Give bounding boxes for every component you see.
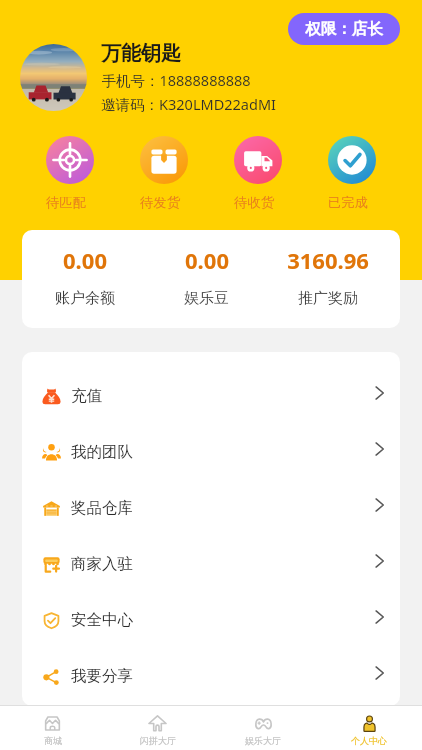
- button[interactable]: 娱乐大厅: [210, 711, 316, 746]
- button[interactable]: 商家入驻: [22, 536, 400, 592]
- staticText: 邀请码：K320LMD22adMI: [101, 94, 276, 114]
- staticText: 推广奖励: [298, 289, 358, 308]
- button[interactable]: 我要分享: [22, 648, 400, 704]
- button[interactable]: 闪拼大厅: [105, 711, 210, 746]
- button[interactable]: 个人中心: [316, 711, 422, 746]
- staticText: 权限：店长: [305, 19, 383, 39]
- button[interactable]: 待发货: [140, 136, 188, 211]
- button[interactable]: 商城: [0, 711, 105, 746]
- staticText: 万能钥匙: [101, 41, 181, 66]
- staticText: 娱乐大厅: [245, 735, 281, 746]
- staticText: 3160.96: [287, 245, 369, 275]
- button[interactable]: 充值: [22, 368, 400, 424]
- staticText: 0.00: [185, 245, 229, 275]
- button[interactable]: 已完成: [328, 136, 376, 211]
- staticText: 已完成: [328, 194, 368, 211]
- button[interactable]: 0.00: [146, 242, 267, 317]
- button[interactable]: 权限：店长: [288, 13, 400, 45]
- staticText: 商城: [44, 735, 62, 746]
- staticText: 商家入驻: [71, 554, 133, 574]
- button[interactable]: 我的团队: [22, 424, 400, 480]
- other: Avatar: [20, 44, 87, 111]
- button[interactable]: 奖品仓库: [22, 480, 400, 536]
- button[interactable]: 待收货: [234, 136, 282, 211]
- button[interactable]: 安全中心: [22, 592, 400, 648]
- staticText: 奖品仓库: [71, 498, 133, 518]
- staticText: 我要分享: [71, 666, 133, 686]
- staticText: 娱乐豆: [184, 289, 229, 308]
- staticText: 手机号：18888888888: [101, 70, 251, 90]
- staticText: 闪拼大厅: [140, 735, 176, 746]
- button[interactable]: 0.00: [24, 242, 146, 317]
- staticText: 个人中心: [351, 735, 387, 746]
- staticText: 待发货: [140, 194, 180, 211]
- staticText: 我的团队: [71, 442, 133, 462]
- staticText: 账户余额: [55, 289, 115, 308]
- staticText: 0.00: [63, 245, 107, 275]
- staticText: 充值: [71, 386, 102, 406]
- button[interactable]: 3160.96: [267, 242, 388, 317]
- staticText: 待匹配: [46, 194, 86, 211]
- staticText: 待收货: [234, 194, 274, 211]
- staticText: 安全中心: [71, 610, 133, 630]
- button[interactable]: 待匹配: [46, 136, 94, 211]
